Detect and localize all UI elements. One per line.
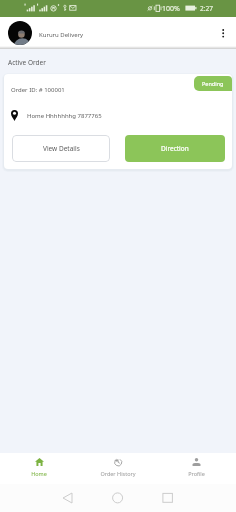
staticText: Direction <box>161 144 189 153</box>
button[interactable]: Profile <box>157 453 236 484</box>
button[interactable]: Order ID: # 100001 <box>4 74 232 169</box>
button[interactable]: Profile picture <box>8 21 32 45</box>
staticText: Home Hhhhhhhg 7877765 <box>27 112 102 120</box>
staticText: Home <box>31 470 47 477</box>
staticText: Pending <box>202 80 224 87</box>
staticText: 2:27 <box>200 4 213 13</box>
staticText: Active Order <box>8 58 46 67</box>
staticText: Kururu Delivery <box>39 31 84 39</box>
staticText: Order History <box>100 470 136 477</box>
button[interactable]: Pending <box>194 76 232 91</box>
button[interactable]: More options <box>213 23 233 43</box>
button[interactable]: Home <box>0 453 78 484</box>
button[interactable]: Home <box>108 488 128 508</box>
staticText: 100% <box>162 4 180 14</box>
button[interactable]: Back <box>58 488 78 508</box>
staticText: View Details <box>43 144 80 153</box>
button[interactable]: Direction <box>125 135 225 162</box>
staticText: Order ID: # 100001 <box>11 86 65 94</box>
button[interactable]: View Details <box>12 135 110 162</box>
staticText: Profile <box>188 470 205 477</box>
button[interactable]: Order History <box>78 453 157 484</box>
button[interactable]: Recent apps <box>158 488 178 508</box>
